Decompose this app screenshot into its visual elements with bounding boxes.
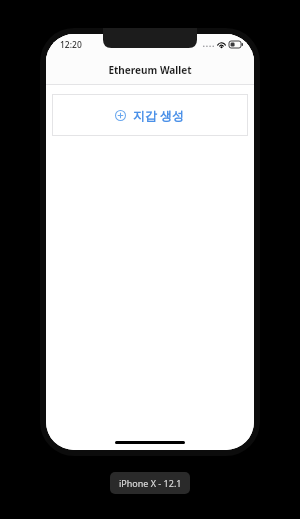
other: Create wallet (115, 110, 126, 121)
staticText: iPhone X - 12.1 (119, 477, 182, 489)
staticText: Ethereum Wallet (108, 63, 192, 77)
button[interactable]: Create wallet (52, 94, 248, 136)
staticText: 지갑 생성 (133, 107, 185, 123)
staticText: 12:20 (60, 39, 82, 51)
